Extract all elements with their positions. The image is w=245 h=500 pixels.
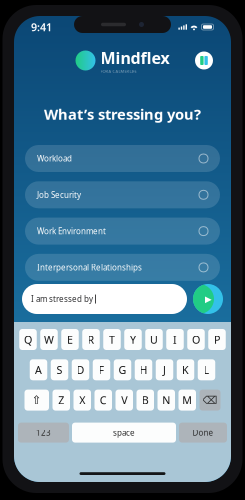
staticText: G bbox=[118, 363, 126, 377]
staticText: Mindflex bbox=[100, 47, 169, 68]
staticText: space bbox=[113, 427, 135, 438]
button[interactable]: Library bbox=[191, 47, 217, 73]
button[interactable]: T bbox=[103, 329, 121, 350]
staticText: X bbox=[79, 393, 85, 407]
staticText: H bbox=[139, 363, 147, 377]
button[interactable]: Interpersonal Relationships bbox=[25, 254, 220, 281]
button[interactable]: X bbox=[73, 390, 91, 411]
staticText: 123 bbox=[36, 427, 51, 438]
button[interactable]: C bbox=[94, 390, 112, 411]
staticText: P bbox=[214, 332, 220, 347]
staticText: ⌫ bbox=[202, 394, 217, 406]
button[interactable]: Z bbox=[52, 390, 70, 411]
staticText: I am stressed by bbox=[31, 294, 93, 304]
button[interactable]: Done bbox=[179, 423, 227, 443]
staticText: Y bbox=[130, 332, 136, 347]
staticText: K bbox=[182, 363, 189, 377]
button[interactable]: V bbox=[115, 390, 133, 411]
staticText: 9:41 bbox=[31, 20, 52, 34]
staticText: Q bbox=[24, 332, 32, 347]
staticText: M bbox=[182, 393, 192, 407]
button[interactable]: Work Environment bbox=[25, 218, 220, 245]
staticText: F bbox=[98, 363, 104, 377]
staticText: Job Security bbox=[37, 189, 81, 200]
button[interactable]: L bbox=[198, 359, 215, 380]
button[interactable]: space bbox=[72, 423, 176, 443]
staticText: J bbox=[163, 363, 166, 377]
button[interactable]: S bbox=[51, 359, 68, 380]
button[interactable]: W bbox=[40, 329, 58, 350]
staticText: N bbox=[162, 393, 170, 407]
button[interactable]: Q bbox=[19, 329, 37, 350]
button[interactable]: A bbox=[30, 359, 47, 380]
staticText: E bbox=[67, 332, 73, 347]
staticText: FOR A CALMER LIFE bbox=[100, 68, 136, 74]
staticText: W bbox=[44, 332, 54, 347]
button[interactable]: G bbox=[114, 359, 131, 380]
staticText: S bbox=[56, 363, 62, 377]
button[interactable]: K bbox=[177, 359, 194, 380]
button[interactable]: Workload bbox=[25, 145, 220, 172]
staticText: D bbox=[76, 363, 84, 377]
staticText: V bbox=[121, 393, 127, 407]
staticText: A bbox=[35, 363, 42, 377]
staticText: Workload bbox=[37, 153, 72, 164]
button[interactable]: H bbox=[135, 359, 152, 380]
button[interactable]: M bbox=[178, 390, 196, 411]
button[interactable]: O bbox=[187, 329, 205, 350]
button[interactable]: D bbox=[72, 359, 89, 380]
button[interactable]: F bbox=[93, 359, 110, 380]
staticText: What’s stressing you? bbox=[44, 104, 201, 124]
button[interactable]: P bbox=[208, 329, 226, 350]
button[interactable]: 123 bbox=[18, 423, 69, 443]
button[interactable]: N bbox=[157, 390, 175, 411]
staticText: U bbox=[150, 332, 158, 347]
staticText: I bbox=[173, 332, 177, 347]
staticText: Z bbox=[58, 393, 64, 407]
staticText: T bbox=[109, 332, 115, 347]
button[interactable]: I bbox=[166, 329, 184, 350]
staticText: ▶ bbox=[204, 294, 211, 304]
button[interactable]: Y bbox=[124, 329, 142, 350]
staticText: C bbox=[100, 393, 107, 407]
button[interactable]: R bbox=[82, 329, 100, 350]
button[interactable]: U bbox=[145, 329, 163, 350]
button[interactable]: J bbox=[156, 359, 173, 380]
staticText: O bbox=[192, 332, 200, 347]
button[interactable]: Shift bbox=[24, 390, 49, 411]
staticText: L bbox=[203, 363, 209, 377]
staticText: Interpersonal Relationships bbox=[37, 262, 142, 273]
staticText: Work Environment bbox=[37, 226, 106, 236]
button[interactable]: Send bbox=[193, 284, 223, 314]
button[interactable]: Delete bbox=[199, 390, 220, 411]
staticText: Done bbox=[192, 427, 213, 438]
button[interactable]: Job Security bbox=[25, 181, 220, 208]
staticText: ⇧ bbox=[32, 393, 42, 407]
staticText: B bbox=[142, 393, 149, 407]
button[interactable]: E bbox=[61, 329, 79, 350]
staticText: R bbox=[87, 332, 94, 347]
button[interactable]: B bbox=[136, 390, 154, 411]
